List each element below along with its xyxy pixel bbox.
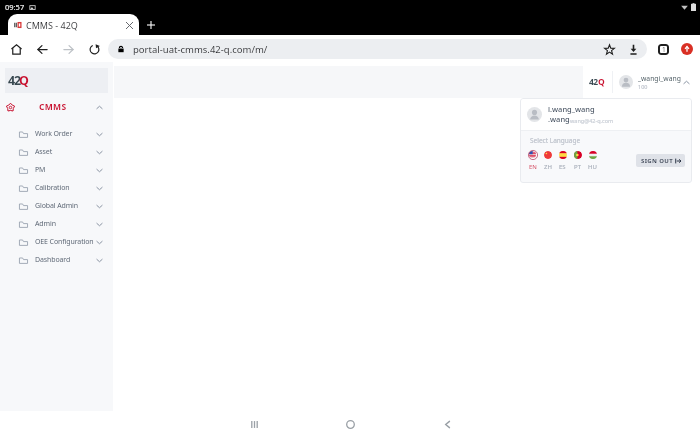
staticText: Asset (35, 147, 53, 157)
staticText: EN (529, 163, 537, 171)
staticText: 1 (662, 45, 666, 54)
staticText: .wang (548, 114, 570, 124)
staticText: Dashboard (35, 255, 71, 265)
staticText: SIGN OUT (641, 157, 673, 165)
button[interactable]: Back (427, 411, 467, 438)
staticText: CMMS - 42Q (26, 19, 78, 31)
staticText: _wangi_wang (638, 74, 681, 83)
button[interactable]: Bookmark (597, 39, 621, 59)
staticText: 09:57 (5, 2, 25, 12)
button[interactable]: CMMS (0, 97, 113, 117)
staticText: PT (574, 163, 581, 171)
button[interactable]: Forward (55, 36, 81, 62)
button[interactable]: Downloads (621, 39, 645, 59)
staticText: wang@42-q.com (570, 117, 614, 124)
button[interactable]: Menu (675, 37, 699, 61)
staticText: 42 (589, 76, 598, 88)
button[interactable]: Close tab (122, 18, 136, 32)
button[interactable]: Reload (81, 36, 107, 62)
button[interactable]: Dashboard (0, 251, 113, 269)
button[interactable]: Home (330, 411, 370, 438)
button[interactable]: Tabs (651, 37, 675, 61)
staticText: Admin (35, 219, 56, 229)
button[interactable]: ES (555, 149, 570, 171)
staticText: l.wang_wang (548, 104, 595, 114)
button[interactable]: New tab (140, 14, 162, 35)
staticText: portal-uat-cmms.42-q.com/m/ (133, 43, 268, 56)
button[interactable]: CMMS - 42Q (8, 14, 139, 35)
button[interactable]: PM (0, 161, 113, 179)
staticText: Calibration (35, 183, 70, 193)
button[interactable]: Back (29, 36, 55, 62)
button[interactable]: HU (585, 149, 600, 171)
staticText: Q (19, 72, 28, 89)
staticText: 42 (8, 72, 20, 89)
button[interactable]: Home (3, 36, 29, 62)
staticText: ZH (544, 163, 552, 171)
button[interactable]: Global Admin (0, 197, 113, 215)
staticText: Work Order (35, 129, 73, 139)
staticText: OEE Configuration (35, 237, 94, 247)
button[interactable]: Work Order (0, 125, 113, 143)
staticText: HU (588, 163, 597, 171)
button[interactable]: Asset (0, 143, 113, 161)
staticText: Select Language (530, 136, 581, 145)
button[interactable]: Calibration (0, 179, 113, 197)
button[interactable]: EN (525, 149, 540, 171)
button[interactable]: Admin (0, 215, 113, 233)
button[interactable]: OEE Configuration (0, 233, 113, 251)
button[interactable]: ZH (540, 149, 555, 171)
button[interactable]: 42 (583, 66, 700, 98)
button[interactable]: portal-uat-cmms.42-q.com/m/ (108, 39, 597, 59)
staticText: Q (598, 76, 605, 88)
button[interactable]: Recents (234, 411, 274, 438)
staticText: PM (35, 165, 46, 175)
button[interactable]: PT (570, 149, 585, 171)
button[interactable]: SIGN OUT (636, 154, 685, 167)
staticText: ES (559, 163, 566, 171)
staticText: Global Admin (35, 201, 79, 211)
staticText: 100 (638, 83, 648, 90)
staticText: CMMS (39, 101, 67, 113)
